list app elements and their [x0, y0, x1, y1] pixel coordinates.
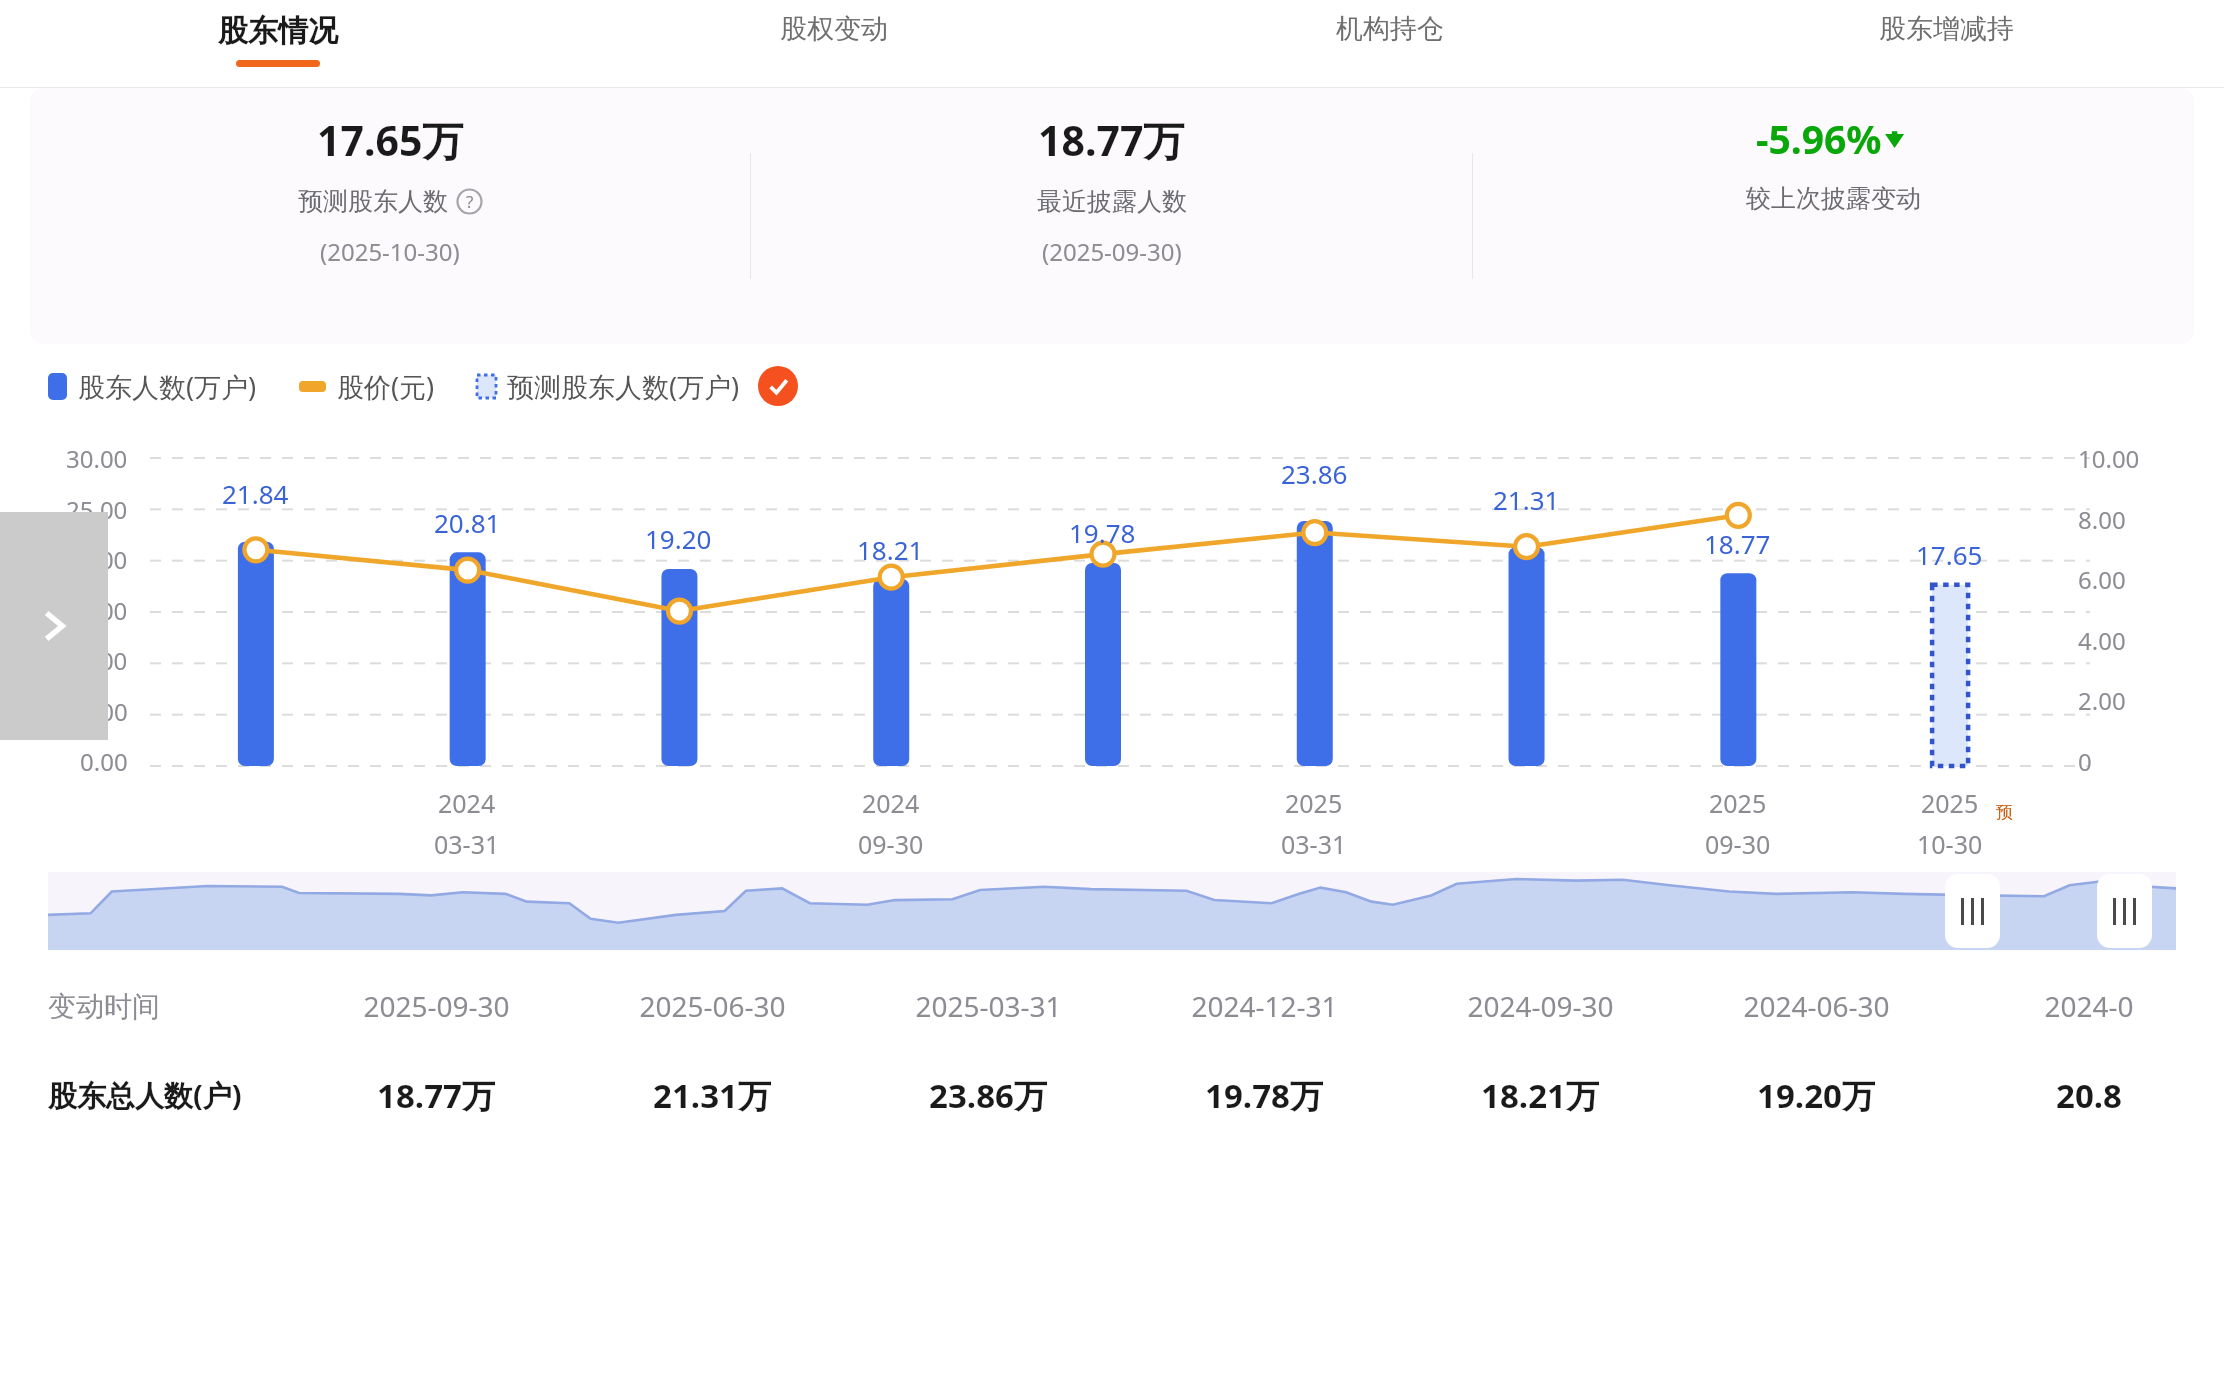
staticText: 2024 — [438, 786, 496, 820]
staticText: 预测股东人数 — [298, 186, 448, 217]
staticText: 0 — [2078, 745, 2092, 778]
staticText: 21.31 — [1493, 482, 1560, 517]
staticText: (2025-10-30) — [320, 235, 460, 268]
staticText: 30.00 — [66, 442, 128, 475]
button[interactable]: 机构持仓 — [1112, 0, 1668, 88]
staticText: 20.81 — [434, 505, 501, 540]
staticText: (2025-09-30) — [1042, 235, 1182, 268]
staticText: 2024 — [862, 786, 920, 820]
staticText: 18.77 — [1704, 526, 1771, 561]
staticText: 股东增减持 — [1879, 12, 2014, 46]
staticText: 20.00 — [66, 543, 128, 576]
staticText: 预 — [1996, 802, 2013, 823]
staticText: 19.78 — [1069, 515, 1136, 550]
staticText: 03-31 — [434, 827, 500, 861]
staticText: 10-30 — [1917, 827, 1983, 861]
staticText: 23.86万 — [929, 1073, 1047, 1118]
staticText: 2025 — [1921, 786, 1979, 820]
staticText: 18.77万 — [377, 1073, 495, 1118]
staticText: 股权变动 — [780, 12, 888, 46]
staticText: 20.8 — [2056, 1073, 2122, 1118]
button[interactable]: 展开 — [0, 512, 108, 740]
button[interactable]: 已选中预测 — [758, 366, 798, 406]
button[interactable]: 时间范围选择 — [48, 872, 2176, 950]
staticText: 18.21 — [857, 532, 924, 567]
staticText: 19.78万 — [1205, 1073, 1323, 1118]
staticText: 最近披露人数 — [1037, 186, 1187, 217]
staticText: 预测股东人数(万户) — [507, 368, 740, 405]
staticText: 19.20万 — [1757, 1073, 1875, 1118]
button[interactable]: 股东增减持 — [1668, 0, 2224, 88]
staticText: 2024-12-31 — [1191, 987, 1338, 1025]
staticText: 机构持仓 — [1336, 12, 1444, 46]
staticText: -5.96% — [1756, 112, 1882, 165]
staticText: 21.31万 — [653, 1073, 771, 1118]
staticText: 21.84 — [222, 476, 289, 511]
staticText: 6.00 — [2078, 563, 2126, 596]
staticText: 较上次披露变动 — [1746, 183, 1921, 214]
staticText: 5.00 — [80, 695, 128, 728]
staticText: 股东人数(万户) — [78, 368, 257, 405]
staticText: 03-31 — [1281, 827, 1347, 861]
staticText: 变动时间 — [48, 989, 160, 1024]
staticText: 17.65万 — [317, 112, 464, 168]
staticText: 4.00 — [2078, 624, 2126, 657]
staticText: 8.00 — [2078, 503, 2126, 536]
staticText: 2025-06-30 — [639, 987, 786, 1025]
staticText: 09-30 — [858, 827, 924, 861]
staticText: 17.65 — [1916, 537, 1983, 572]
staticText: 2025 — [1709, 786, 1767, 820]
button[interactable]: 拖动手柄 — [2097, 874, 2152, 948]
staticText: 18.21万 — [1481, 1073, 1599, 1118]
staticText: 18.77万 — [1038, 112, 1185, 168]
staticText: 2024-09-30 — [1467, 987, 1614, 1025]
staticText: 2.00 — [2078, 684, 2126, 717]
staticText: 2025 — [1285, 786, 1343, 820]
staticText: 股东情况 — [218, 12, 338, 50]
button[interactable]: 股权变动 — [556, 0, 1112, 88]
staticText: 2025-09-30 — [363, 987, 510, 1025]
button[interactable]: 说明 — [456, 188, 483, 215]
staticText: 股价(元) — [337, 368, 435, 405]
staticText: 2024-0 — [2044, 987, 2134, 1025]
staticText: 2025-03-31 — [915, 987, 1062, 1025]
staticText: 0.00 — [80, 745, 128, 778]
staticText: 25.00 — [66, 493, 128, 526]
staticText: 股东总人数(户) — [48, 1075, 242, 1115]
button[interactable]: 股东情况 — [0, 0, 556, 88]
staticText: 09-30 — [1705, 827, 1771, 861]
staticText: 15.00 — [66, 594, 128, 627]
staticText: 2024-06-30 — [1743, 987, 1890, 1025]
staticText: 23.86 — [1281, 456, 1348, 491]
staticText: 10.00 — [2078, 442, 2140, 475]
button[interactable]: 拖动手柄 — [1945, 874, 2000, 948]
staticText: 10.00 — [66, 644, 128, 677]
button[interactable]: 股东总人数(户) — [48, 1060, 2224, 1130]
staticText: 19.20 — [645, 521, 712, 556]
staticText: ? — [466, 190, 474, 213]
